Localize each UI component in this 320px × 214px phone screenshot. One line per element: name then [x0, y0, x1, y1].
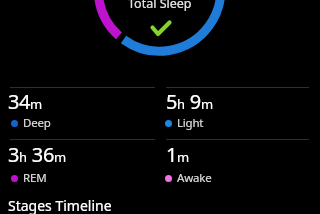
staticText: Light [177, 115, 204, 131]
staticText: 34m [8, 88, 43, 115]
staticText: 1m [166, 141, 190, 168]
staticText: Awake [177, 170, 212, 186]
button[interactable]: 5h 9m [166, 88, 214, 115]
button[interactable]: Light [165, 115, 204, 131]
button[interactable]: Stages Timeline [8, 196, 112, 214]
staticText: 3h 36m [8, 141, 67, 168]
button[interactable]: 1m [166, 141, 190, 168]
button[interactable]: REM [11, 170, 47, 186]
button[interactable]: 34m [8, 88, 43, 115]
staticText: Total Sleep [128, 0, 192, 12]
button[interactable]: Deep [11, 115, 51, 131]
button[interactable]: 3h 36m [8, 141, 67, 168]
button[interactable]: Awake [165, 170, 212, 186]
staticText: REM [23, 170, 47, 186]
staticText: Stages Timeline [8, 196, 112, 214]
staticText: Deep [23, 115, 51, 131]
staticText: 5h 9m [166, 88, 214, 115]
